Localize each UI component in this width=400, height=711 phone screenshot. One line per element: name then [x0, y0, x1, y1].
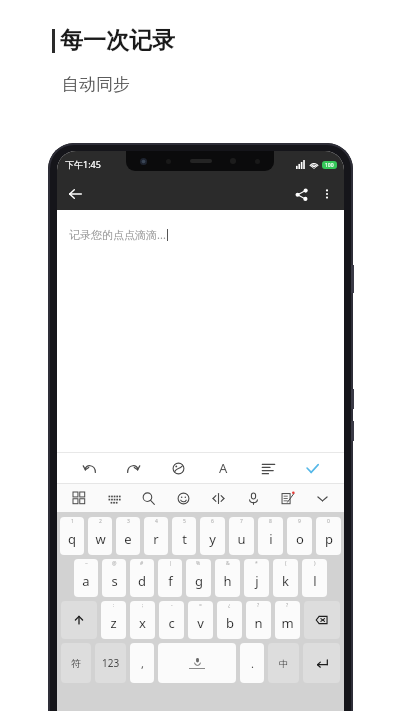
staticText: ? [286, 602, 289, 609]
button[interactable]: Space [158, 643, 236, 683]
button[interactable]: Share [288, 181, 314, 207]
button[interactable]: ? [275, 601, 300, 639]
staticText: j [255, 572, 259, 590]
button[interactable]: 3 [116, 517, 140, 555]
staticText: 123 [102, 656, 120, 670]
button[interactable]: Voice input [240, 485, 266, 511]
staticText: y [209, 530, 216, 548]
staticText: c [168, 614, 175, 632]
button[interactable]: & [215, 559, 240, 597]
button[interactable]: 4 [144, 517, 168, 555]
button[interactable]: Emoji [170, 485, 196, 511]
button[interactable]: More options [314, 181, 340, 207]
staticText: , [141, 656, 144, 671]
staticText: u [237, 530, 246, 548]
staticText: - [171, 602, 173, 609]
button[interactable]: 符 [61, 643, 91, 683]
button[interactable]: Enter [303, 643, 340, 683]
staticText: a [82, 572, 90, 590]
staticText: = [199, 602, 202, 609]
staticText: w [95, 530, 106, 548]
button[interactable]: = [188, 601, 213, 639]
button[interactable]: Text format [210, 455, 236, 481]
staticText: 5 [183, 518, 186, 525]
button[interactable]: 5 [172, 517, 196, 555]
button[interactable]: Keyboard [101, 485, 127, 511]
staticText: n [254, 614, 263, 632]
button[interactable]: # [130, 559, 154, 597]
button[interactable]: 2 [88, 517, 112, 555]
button[interactable]: 1 [60, 517, 84, 555]
button[interactable]: 9 [287, 517, 312, 555]
button[interactable]: : [101, 601, 126, 639]
staticText: m [281, 614, 294, 632]
staticText: 0 [327, 518, 330, 525]
staticText: f [168, 572, 173, 590]
button[interactable]: Insert image [165, 455, 191, 481]
button[interactable]: @ [102, 559, 126, 597]
button[interactable]: * [244, 559, 269, 597]
button[interactable]: - [159, 601, 184, 639]
button[interactable]: Handwriting [274, 485, 300, 511]
staticText: A [219, 459, 228, 477]
button[interactable]: 中 [268, 643, 299, 683]
staticText: ¿ [228, 602, 231, 609]
button[interactable]: Back [62, 181, 88, 207]
button[interactable]: ~ [74, 559, 98, 597]
button[interactable]: % [186, 559, 211, 597]
staticText: 3 [127, 518, 130, 525]
staticText: * [255, 560, 258, 567]
staticText: 自动同步 [62, 74, 130, 95]
button[interactable]: 8 [258, 517, 283, 555]
button[interactable]: 123 [95, 643, 126, 683]
button[interactable]: ? [246, 601, 271, 639]
staticText: k [282, 572, 289, 590]
button[interactable]: Undo [76, 455, 102, 481]
staticText: @ [112, 560, 117, 567]
staticText: g [195, 572, 203, 590]
staticText: : [113, 602, 115, 609]
button[interactable]: 0 [316, 517, 341, 555]
button[interactable]: 6 [200, 517, 225, 555]
button[interactable]: Redo [120, 455, 146, 481]
staticText: i [269, 530, 273, 548]
staticText: q [68, 530, 76, 548]
staticText: 100 [325, 162, 334, 169]
button[interactable]: Search [135, 485, 161, 511]
staticText: b [226, 614, 234, 632]
button[interactable]: Align [255, 455, 281, 481]
button[interactable]: Hide keyboard [309, 485, 335, 511]
staticText: % [196, 560, 201, 567]
button[interactable]: Done [299, 455, 325, 481]
staticText: h [223, 572, 232, 590]
staticText: ~ [85, 560, 88, 567]
button[interactable]: ¿ [217, 601, 242, 639]
staticText: v [197, 614, 204, 632]
staticText: 中 [279, 658, 288, 669]
button[interactable]: Apps [66, 485, 92, 511]
button[interactable]: ( [273, 559, 298, 597]
button[interactable]: | [158, 559, 182, 597]
button[interactable]: Backspace [304, 601, 340, 639]
button[interactable]: Clipboard [205, 485, 231, 511]
staticText: ( [285, 560, 287, 567]
staticText: p [325, 530, 333, 548]
staticText: r [153, 530, 159, 548]
staticText: 符 [71, 657, 81, 670]
button[interactable]: , [130, 643, 154, 683]
button[interactable]: 7 [229, 517, 254, 555]
staticText: o [296, 530, 304, 548]
staticText: s [111, 572, 118, 590]
button[interactable]: . [240, 643, 264, 683]
staticText: e [124, 530, 132, 548]
button[interactable]: ; [130, 601, 155, 639]
staticText: l [313, 572, 317, 590]
staticText: 下午1:45 [65, 158, 101, 170]
staticText: 9 [298, 518, 301, 525]
button[interactable]: ) [302, 559, 327, 597]
staticText: ? [257, 602, 260, 609]
button[interactable]: Shift [61, 601, 97, 639]
staticText: 4 [155, 518, 158, 525]
staticText: 7 [240, 518, 243, 525]
staticText: . [251, 656, 254, 671]
